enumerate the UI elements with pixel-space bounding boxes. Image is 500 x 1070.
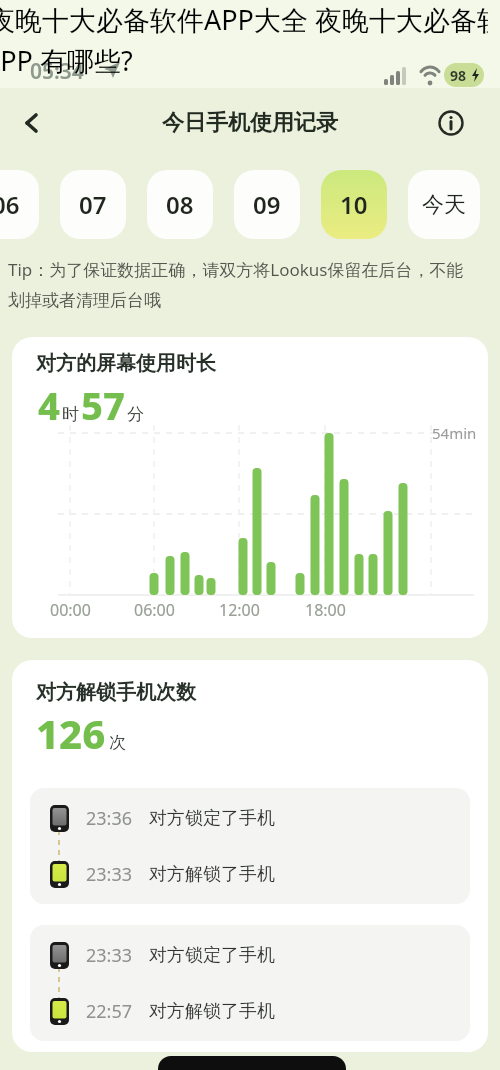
staticText: 18:00	[305, 599, 346, 621]
button[interactable]: 10	[321, 170, 387, 239]
button[interactable]	[22, 113, 42, 133]
staticText: 次	[109, 732, 126, 753]
staticText: APP 有哪些?	[0, 42, 133, 79]
staticText: 06:00	[134, 599, 175, 621]
button[interactable]: 06	[0, 170, 39, 239]
button[interactable]: 09	[234, 170, 300, 239]
staticText: 08	[166, 188, 194, 221]
staticText: 4	[38, 379, 60, 431]
staticText: 对方锁定了手机	[149, 807, 275, 830]
staticText: 时	[62, 404, 79, 425]
button[interactable]	[438, 110, 464, 136]
staticText: 对方解锁手机次数	[36, 680, 196, 705]
staticText: 98	[450, 66, 467, 85]
staticText: 54min	[432, 423, 477, 443]
staticText: 今天	[422, 191, 466, 219]
staticText: 对方的屏幕使用时长	[36, 351, 216, 376]
staticText: 57	[81, 379, 125, 431]
staticText: 对方解锁了手机	[149, 863, 275, 886]
staticText: 分	[127, 404, 144, 425]
button[interactable]	[158, 1056, 346, 1070]
staticText: 05:34	[30, 57, 84, 86]
staticText: 对方锁定了手机	[149, 944, 275, 967]
staticText: 00:00	[50, 599, 91, 621]
button[interactable]: 今天	[408, 170, 480, 239]
button[interactable]: 07	[60, 170, 126, 239]
staticText: 今日手机使用记录	[162, 109, 338, 137]
staticText: 10	[340, 188, 368, 221]
button[interactable]: 08	[147, 170, 213, 239]
staticText: 06	[0, 188, 20, 221]
staticText: 07	[79, 188, 107, 221]
staticText: 23:33	[86, 862, 133, 887]
staticText: 对方解锁了手机	[149, 1000, 275, 1023]
staticText: Tip：为了保证数据正确，请双方将Lookus保留在后台，不能 划掉或者清理后台…	[8, 258, 464, 311]
button[interactable]: 22:57	[30, 988, 470, 1034]
staticText: 12:00	[219, 599, 260, 621]
button[interactable]: 23:33	[30, 851, 470, 897]
button[interactable]: 23:36	[30, 795, 470, 841]
staticText: 23:36	[86, 806, 133, 831]
button[interactable]: 23:33	[30, 932, 470, 978]
staticText: 夜晚十大必备软件APP大全 夜晚十大必备软件	[0, 1, 488, 38]
staticText: 23:33	[86, 943, 133, 968]
staticText: 09	[253, 188, 281, 221]
staticText: 22:57	[86, 999, 133, 1024]
staticText: 126	[36, 706, 106, 760]
